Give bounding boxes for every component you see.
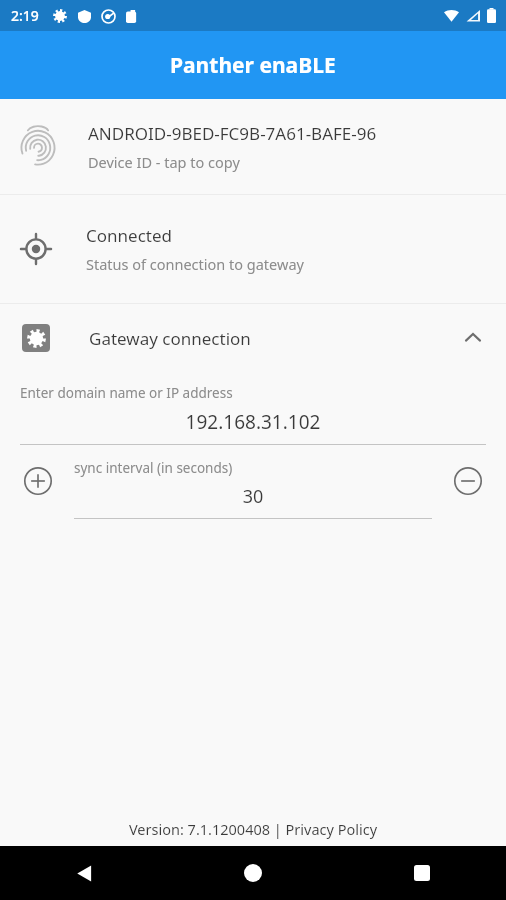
- staticText: ANDROID-9BED-FC9B-7A61-BAFE-96: [88, 122, 377, 145]
- button[interactable]: Connected: [0, 195, 506, 303]
- button[interactable]: Enter domain name or IP address: [0, 384, 506, 445]
- staticText: Enter domain name or IP address: [20, 384, 233, 402]
- staticText: Gateway connection: [89, 327, 251, 350]
- staticText: sync interval (in seconds): [74, 459, 233, 477]
- button[interactable]: Gateway connection: [0, 304, 506, 372]
- button[interactable]: Increase sync interval: [16, 459, 60, 503]
- staticText: 2:19: [11, 6, 39, 25]
- staticText: Panther enaBLE: [170, 51, 336, 80]
- button[interactable]: Home: [168, 846, 337, 900]
- button[interactable]: Recent apps: [337, 846, 506, 900]
- button[interactable]: Version: 7.1.1200408 | Privacy Policy: [0, 819, 506, 846]
- staticText: Device ID - tap to copy: [88, 152, 240, 172]
- staticText: Status of connection to gateway: [86, 254, 304, 274]
- staticText: 192.168.31.102: [20, 409, 486, 435]
- button[interactable]: ANDROID-9BED-FC9B-7A61-BAFE-96: [0, 99, 506, 194]
- button[interactable]: Back: [0, 846, 168, 900]
- button[interactable]: Decrease sync interval: [446, 459, 490, 503]
- other: Collapse Gateway connection: [462, 327, 484, 349]
- staticText: 30: [74, 484, 432, 509]
- staticText: Connected: [86, 224, 172, 247]
